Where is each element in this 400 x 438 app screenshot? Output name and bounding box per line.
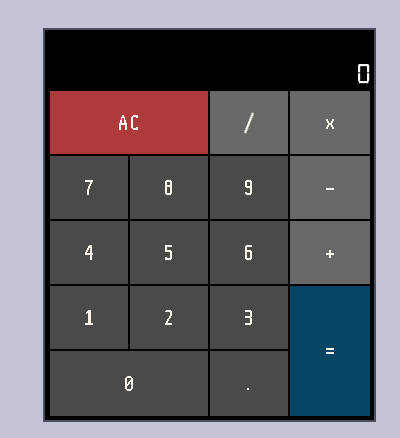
button[interactable]: Equals [290,286,370,416]
button[interactable]: 1 [50,286,128,349]
button[interactable]: Minus [290,156,370,219]
other: Display showing 0 [45,30,374,91]
button[interactable]: 7 [50,156,128,219]
button[interactable]: 3 [210,286,288,349]
button[interactable]: 2 [130,286,208,349]
button[interactable]: Plus [290,221,370,284]
button[interactable]: 8 [130,156,208,219]
button[interactable]: 0 [50,351,208,416]
button[interactable]: 5 [130,221,208,284]
button[interactable]: Divide [210,91,288,154]
button[interactable]: 4 [50,221,128,284]
button[interactable]: Multiply [290,91,370,154]
button[interactable]: All clear [50,91,208,154]
button[interactable]: 6 [210,221,288,284]
button[interactable]: Decimal point [210,351,288,416]
button[interactable]: 9 [210,156,288,219]
